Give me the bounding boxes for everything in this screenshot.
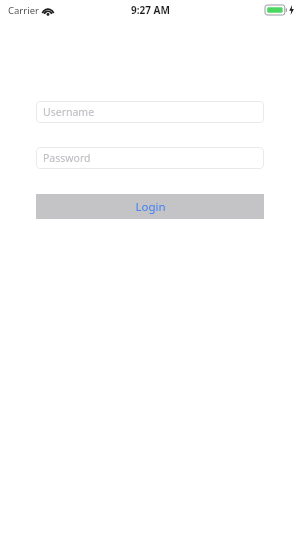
staticText: Username	[43, 105, 95, 119]
staticText: Carrier	[8, 4, 39, 17]
staticText: 9:27 AM	[131, 3, 170, 17]
staticText: Login	[135, 199, 166, 215]
staticText: Password	[43, 151, 91, 165]
button[interactable]: Username	[36, 101, 264, 123]
button[interactable]: Login	[36, 194, 264, 219]
other: Battery charging	[265, 5, 287, 15]
other: Wi-Fi signal	[42, 6, 54, 16]
button[interactable]: Password	[36, 147, 264, 169]
